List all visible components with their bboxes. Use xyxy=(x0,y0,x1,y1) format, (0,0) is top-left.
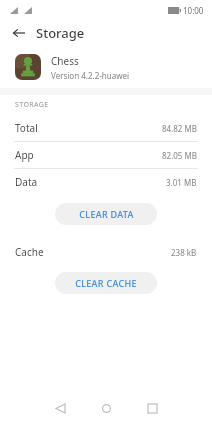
staticText: CLEAR DATA xyxy=(79,208,134,220)
button[interactable]: Back xyxy=(44,392,76,424)
staticText: 84.82 MB xyxy=(162,123,197,134)
staticText: 238 kB xyxy=(171,247,197,258)
button[interactable]: Back xyxy=(9,23,29,43)
staticText: App xyxy=(15,148,34,162)
button[interactable]: Recent apps xyxy=(136,392,168,424)
staticText: 82.05 MB xyxy=(162,150,197,161)
button[interactable]: Home xyxy=(90,392,122,424)
staticText: Cache xyxy=(15,245,44,259)
button[interactable]: Cache xyxy=(0,239,212,265)
staticText: CLEAR CACHE xyxy=(75,277,137,289)
button[interactable]: Total xyxy=(0,115,212,141)
button[interactable]: Data xyxy=(0,169,212,195)
staticText: Storage xyxy=(36,24,85,42)
staticText: 3.01 MB xyxy=(166,177,197,188)
staticText: STORAGE xyxy=(15,100,49,110)
button[interactable]: CLEAR CACHE xyxy=(55,272,157,294)
staticText: Data xyxy=(15,175,38,189)
staticText: Chess xyxy=(51,54,79,68)
button[interactable]: CLEAR DATA xyxy=(55,203,157,225)
staticText: Total xyxy=(15,121,38,135)
staticText: 10:00 xyxy=(183,5,204,16)
button[interactable]: App xyxy=(0,142,212,168)
staticText: Version 4.2.2-huawei xyxy=(51,70,130,81)
button[interactable]: Chess xyxy=(0,46,212,88)
